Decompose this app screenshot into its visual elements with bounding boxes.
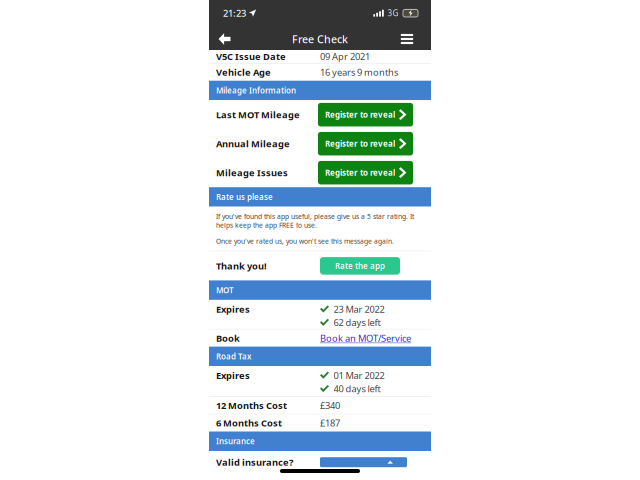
staticText: 23 Mar 2022 — [333, 303, 384, 315]
staticText: Last MOT Mileage — [216, 108, 300, 121]
staticText: Annual Mileage — [216, 137, 290, 150]
button[interactable]: Valid insurance — [320, 457, 407, 467]
button[interactable]: Back — [212, 26, 236, 51]
staticText: 09 Apr 2021 — [320, 50, 370, 63]
staticText: Road Tax — [216, 351, 251, 362]
staticText: £340 — [320, 399, 340, 411]
staticText: 6 Months Cost — [216, 417, 282, 429]
button[interactable]: Book an MOT/Service — [320, 332, 411, 344]
staticText: V5C Issue Date — [216, 50, 286, 63]
staticText: Insurance — [216, 436, 255, 446]
staticText: Register to reveal — [325, 138, 395, 149]
staticText: Expires — [216, 369, 250, 381]
button[interactable]: Register to reveal — [318, 103, 413, 126]
staticText: 40 days left — [333, 382, 380, 395]
button[interactable]: Menu — [395, 26, 419, 51]
staticText: Book an MOT/Service — [320, 332, 411, 344]
staticText: Thank you! — [216, 260, 267, 272]
staticText: Mileage Issues — [216, 166, 288, 179]
button[interactable]: Register to reveal — [318, 132, 413, 155]
staticText: Mileage Information — [216, 85, 296, 96]
button[interactable]: Rate the app — [320, 257, 400, 275]
staticText: 21:23 — [223, 7, 246, 19]
staticText: Vehicle Age — [216, 66, 271, 78]
staticText: Once you've rated us, you won't see this… — [216, 237, 394, 245]
staticText: Rate the app — [335, 261, 385, 271]
staticText: If you've found this app useful, please … — [216, 212, 414, 230]
staticText: 01 Mar 2022 — [333, 369, 384, 381]
staticText: MOT — [216, 285, 234, 295]
staticText: Register to reveal — [325, 109, 395, 120]
staticText: Register to reveal — [325, 167, 395, 178]
button[interactable]: Register to reveal — [318, 161, 413, 184]
staticText: Valid insurance? — [216, 456, 293, 468]
staticText: 16 years 9 months — [320, 66, 398, 78]
staticText: 62 days left — [333, 316, 380, 329]
staticText: Free Check — [292, 32, 348, 46]
staticText: 12 Months Cost — [216, 399, 287, 411]
staticText: £187 — [320, 417, 340, 429]
staticText: Rate us please — [216, 192, 273, 202]
staticText: Expires — [216, 303, 250, 315]
staticText: 3G — [387, 8, 398, 18]
staticText: Book — [216, 332, 240, 344]
